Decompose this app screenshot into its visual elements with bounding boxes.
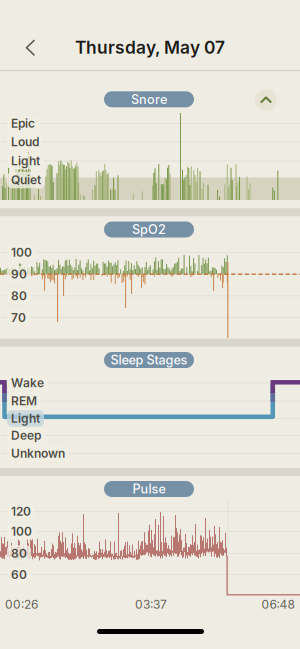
staticText: 120 <box>11 504 31 519</box>
staticText: 100 <box>11 524 32 539</box>
staticText: Sleep Stages <box>110 352 187 368</box>
staticText: Light <box>11 411 40 426</box>
staticText: 60 <box>11 567 27 582</box>
staticText: Pulse <box>132 481 165 497</box>
button[interactable]: Sleep Stages <box>104 352 194 368</box>
staticText: 06:48 <box>261 597 294 612</box>
button[interactable]: Back <box>14 31 46 63</box>
staticText: Unknown <box>11 446 65 461</box>
staticText: 90 <box>11 267 27 281</box>
button[interactable]: SpO2 <box>104 221 194 237</box>
button[interactable]: Snore <box>104 91 194 107</box>
staticText: Light <box>11 154 40 168</box>
button[interactable]: Pulse <box>104 481 194 497</box>
staticText: 100 <box>11 245 32 260</box>
staticText: Snore <box>131 92 167 107</box>
staticText: Epic <box>11 116 35 131</box>
button[interactable]: Collapse Snore <box>255 89 277 111</box>
staticText: 80 <box>11 289 27 303</box>
staticText: 00:26 <box>5 597 38 612</box>
staticText: 03:37 <box>135 597 167 612</box>
staticText: Wake <box>11 376 44 390</box>
staticText: Thursday, May 07 <box>75 37 225 58</box>
staticText: 70 <box>11 310 26 325</box>
staticText: 80 <box>11 546 27 561</box>
staticText: Quiet <box>11 173 41 187</box>
staticText: SpO2 <box>132 222 166 237</box>
staticText: Deep <box>11 428 41 443</box>
staticText: REM <box>11 394 37 408</box>
staticText: Loud <box>11 135 39 149</box>
